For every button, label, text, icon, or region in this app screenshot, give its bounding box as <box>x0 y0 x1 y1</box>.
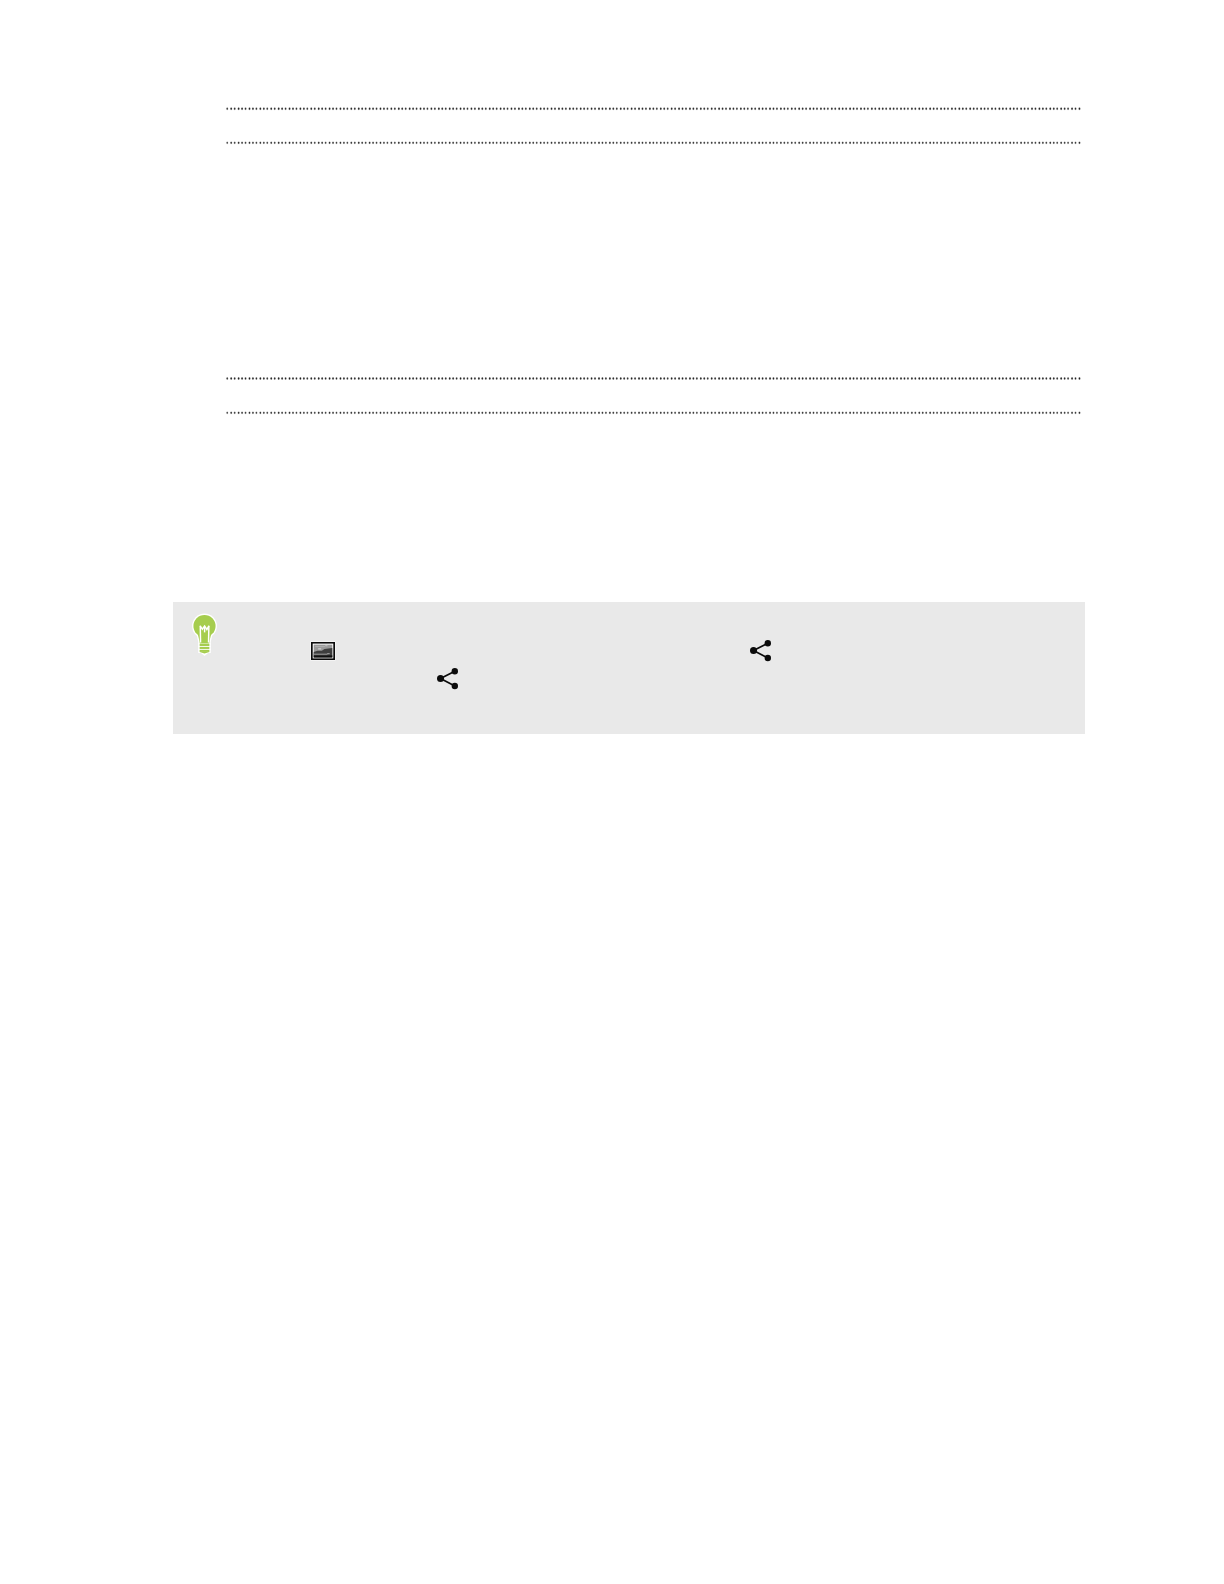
button[interactable]: Photo <box>311 642 335 660</box>
button[interactable]: Share <box>437 668 458 689</box>
button[interactable]: Tip <box>173 602 1085 734</box>
other: Tip <box>192 614 217 655</box>
button[interactable]: Share <box>750 640 771 661</box>
